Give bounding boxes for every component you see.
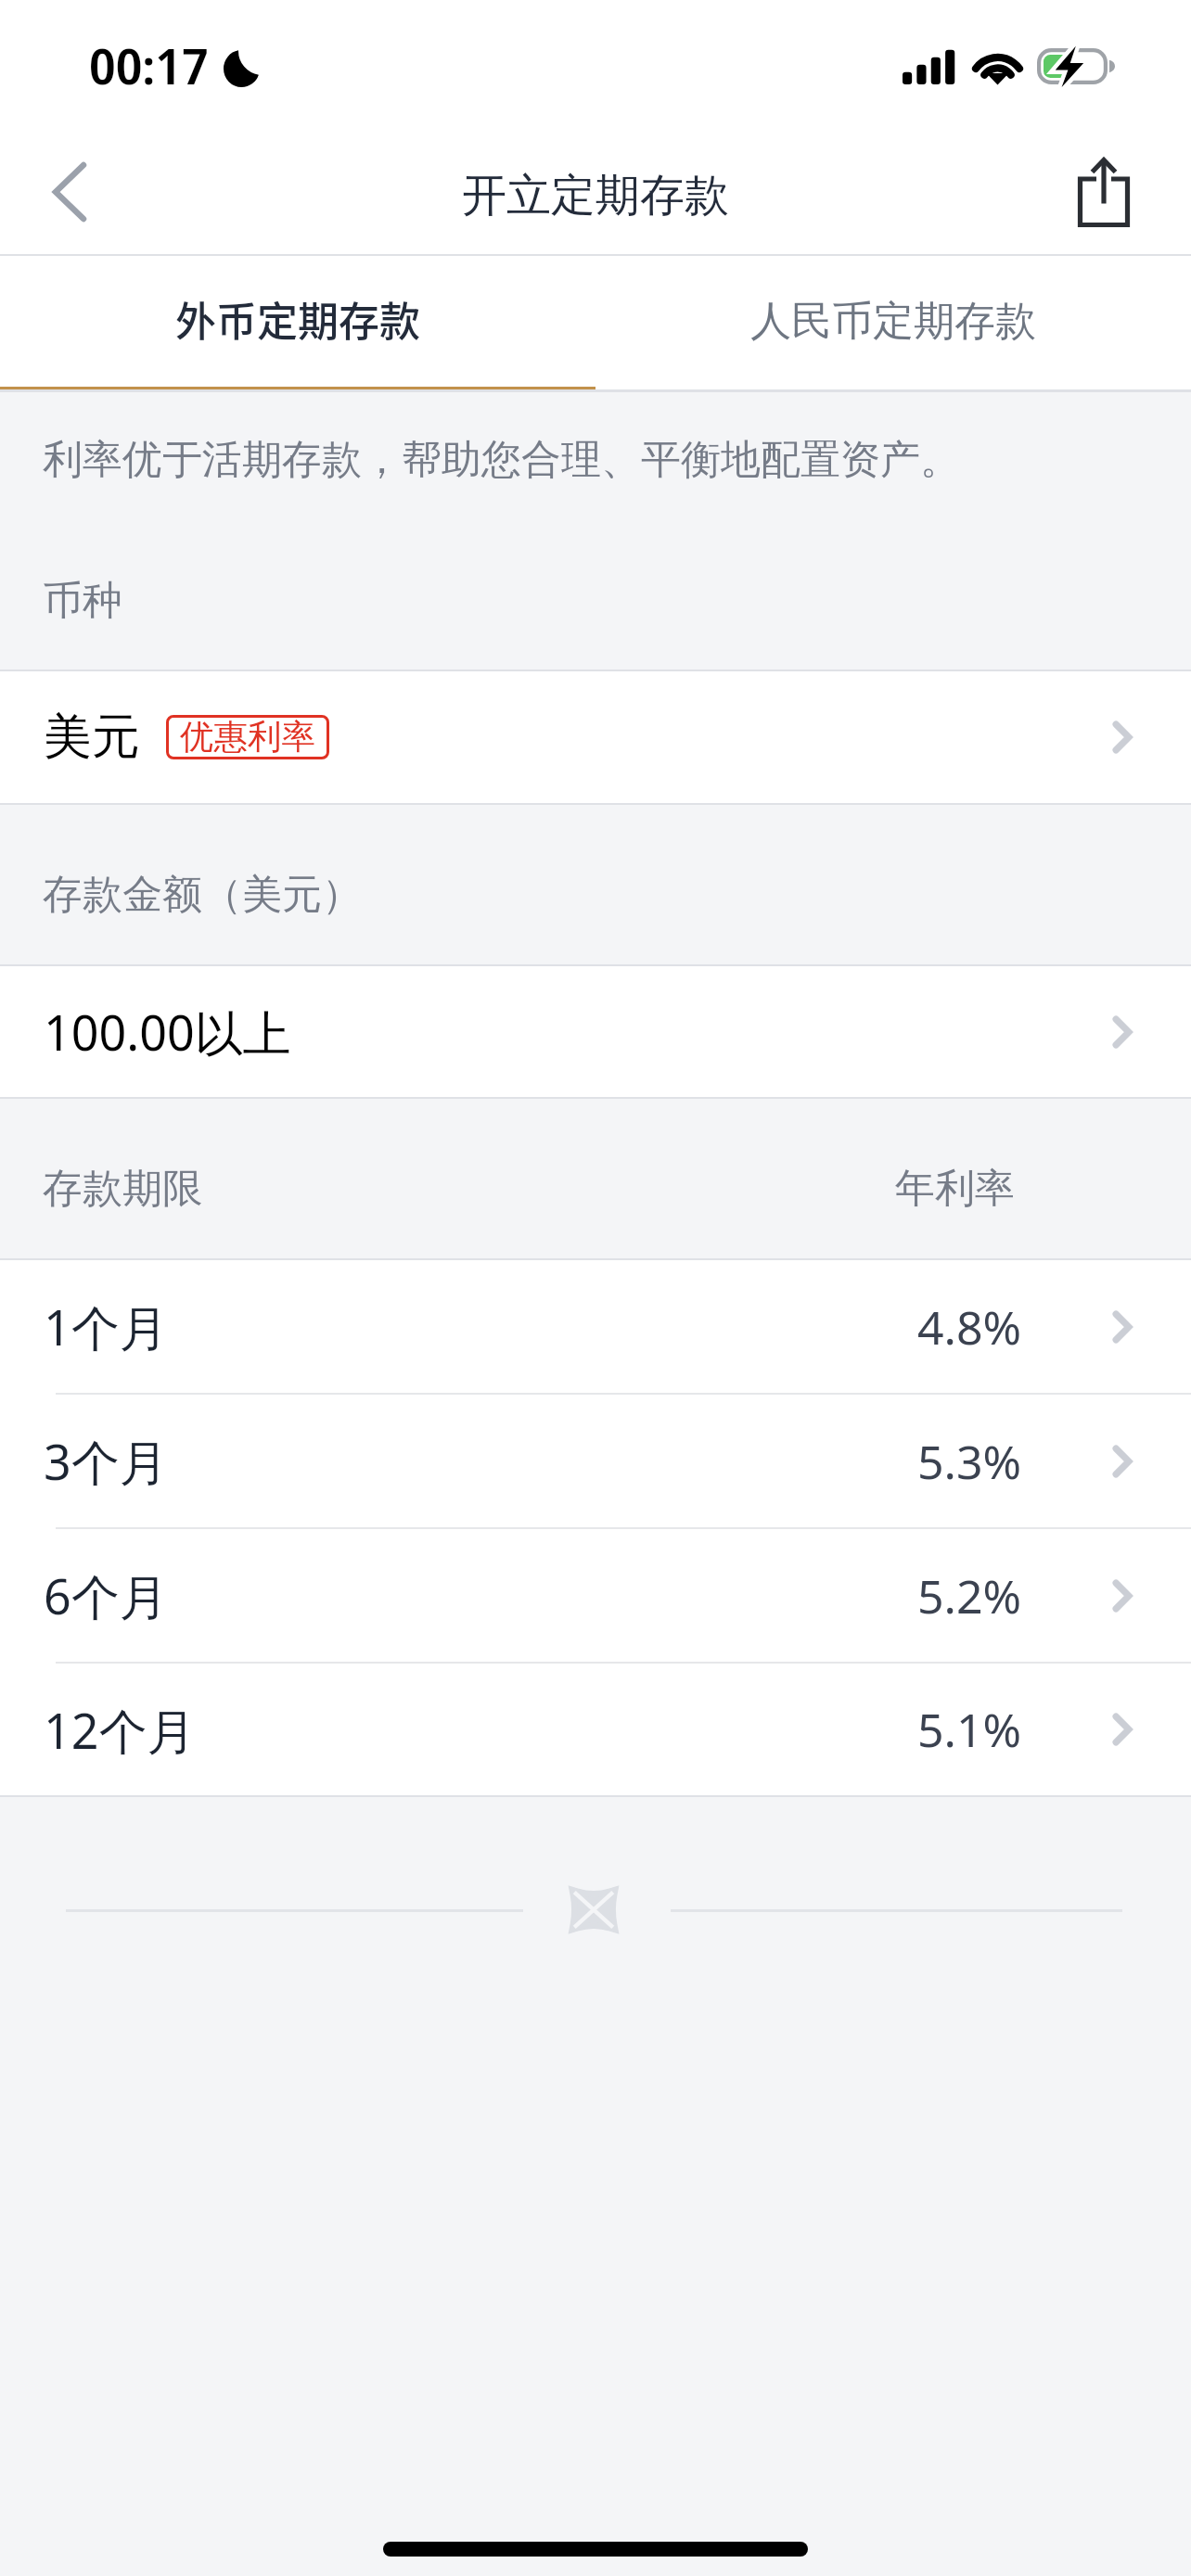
button[interactable]: 外币定期存款: [0, 256, 595, 387]
staticText: 年利率: [895, 1164, 1015, 1214]
button[interactable]: 3个月: [0, 1395, 1191, 1527]
staticText: 12个月: [44, 1697, 196, 1763]
staticText: 存款期限: [43, 1164, 202, 1214]
staticText: 外币定期存款: [175, 289, 420, 349]
staticText: 6个月: [44, 1562, 168, 1628]
staticText: 5.1%: [917, 1698, 1022, 1761]
staticText: 开立定期存款: [462, 168, 729, 223]
staticText: 100.00以上: [44, 999, 291, 1065]
staticText: 币种: [43, 576, 122, 626]
button[interactable]: 6个月: [0, 1529, 1191, 1662]
staticText: 00:17: [89, 32, 209, 98]
staticText: 优惠利率: [180, 716, 315, 759]
staticText: 5.2%: [917, 1564, 1022, 1627]
button[interactable]: 100.00以上: [0, 966, 1191, 1097]
button[interactable]: 美元: [0, 671, 1191, 803]
staticText: 利率优于活期存款，帮助您合理、平衡地配置资产。: [43, 435, 960, 485]
staticText: 3个月: [44, 1428, 168, 1494]
staticText: 5.3%: [917, 1430, 1022, 1493]
button[interactable]: Back: [14, 139, 125, 245]
button[interactable]: 人民币定期存款: [595, 256, 1191, 387]
staticText: 1个月: [44, 1294, 168, 1359]
staticText: 美元: [44, 707, 140, 768]
staticText: 存款金额（美元）: [43, 870, 362, 920]
staticText: 人民币定期存款: [750, 296, 1036, 347]
staticText: 4.8%: [917, 1295, 1022, 1358]
button[interactable]: 1个月: [0, 1260, 1191, 1393]
button[interactable]: Share: [1061, 140, 1146, 244]
button[interactable]: 12个月: [0, 1664, 1191, 1795]
